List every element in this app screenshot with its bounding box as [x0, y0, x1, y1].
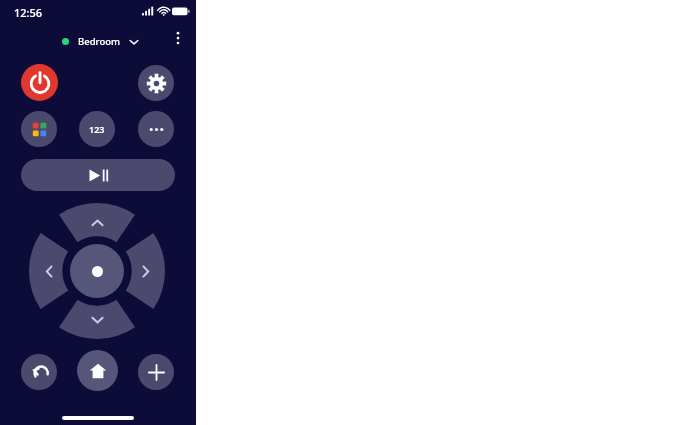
button[interactable]: Bedroom	[60, 33, 142, 50]
button[interactable]: Add	[138, 354, 174, 390]
button[interactable]: Right	[125, 247, 165, 295]
button[interactable]: Play or pause	[21, 159, 175, 191]
button[interactable]: Power	[21, 64, 58, 101]
button[interactable]: Home	[77, 350, 118, 391]
button[interactable]: 123	[79, 111, 115, 147]
staticText: 12:56	[14, 5, 43, 20]
button[interactable]: More	[138, 111, 174, 147]
button[interactable]: Down	[73, 299, 121, 339]
button[interactable]: Apps	[21, 111, 57, 147]
button[interactable]: Left	[29, 247, 69, 295]
button[interactable]: Up	[73, 203, 121, 243]
button[interactable]: More options	[166, 26, 190, 50]
staticText: Bedroom	[78, 35, 120, 48]
button[interactable]: Settings	[138, 65, 174, 101]
staticText: 123	[89, 123, 105, 135]
button[interactable]: Back	[21, 354, 57, 390]
button[interactable]: Select	[70, 244, 124, 298]
